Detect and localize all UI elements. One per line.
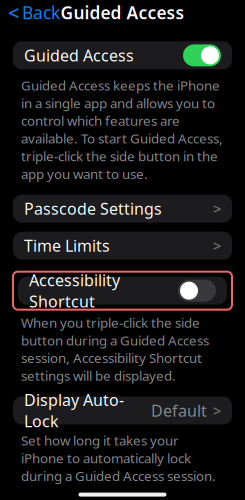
staticText: Time Limits — [24, 235, 110, 256]
staticText: < — [8, 0, 19, 26]
staticText: Guided Access — [60, 1, 184, 24]
staticText: > — [213, 199, 221, 218]
staticText: > — [213, 401, 221, 420]
staticText: Set how long it takes your iPhone to aut… — [21, 431, 216, 485]
staticText: Accessibility Shortcut — [29, 269, 120, 312]
button[interactable]: Time Limits — [13, 232, 232, 260]
button[interactable]: Display Auto-Lock — [13, 396, 232, 424]
staticText: Default — [151, 400, 207, 421]
staticText: Guided Access — [24, 45, 134, 66]
staticText: Back — [22, 1, 60, 24]
staticText: > — [213, 236, 221, 255]
button[interactable]: < — [0, 0, 68, 27]
staticText: Passcode Settings — [24, 198, 162, 219]
staticText: Guided Access keeps the iPhone in a sing… — [21, 76, 223, 183]
button[interactable]: Guided Access — [13, 41, 232, 69]
button[interactable]: Accessibility Shortcut — [13, 272, 232, 310]
button[interactable]: Passcode Settings — [13, 195, 232, 223]
staticText: When you triple-click the side button du… — [21, 314, 209, 384]
staticText: Display Auto-Lock — [24, 389, 124, 432]
